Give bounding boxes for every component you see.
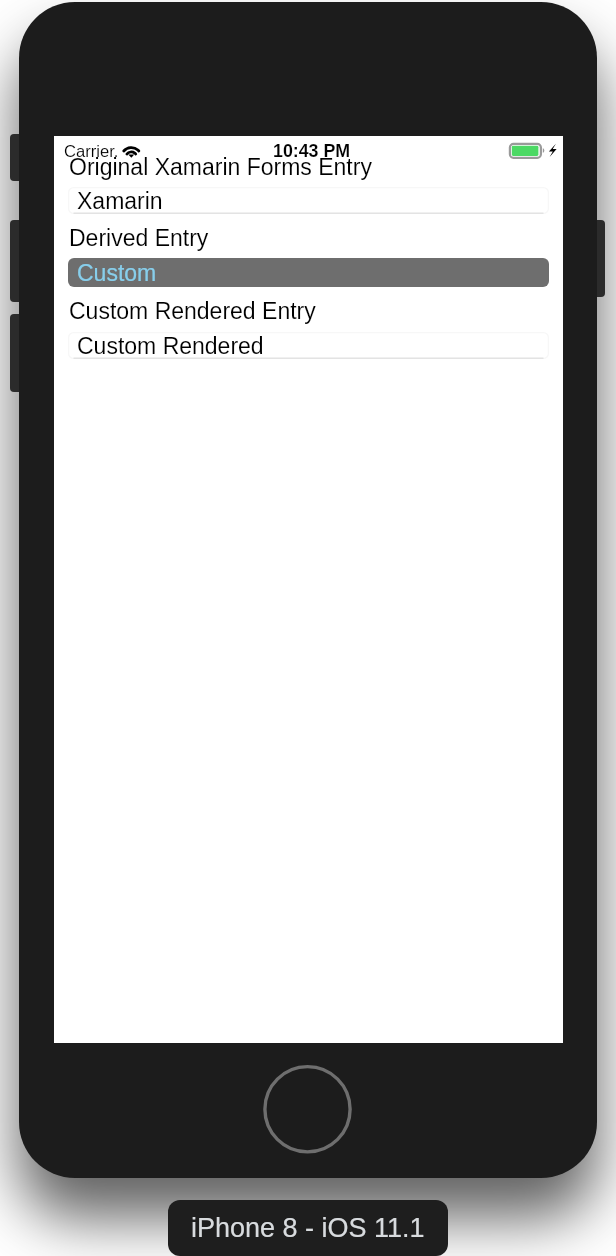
button[interactable]: Custom [68,258,549,287]
other: Home [257,1059,358,1160]
staticText: Custom [77,260,157,286]
other: Power [592,220,605,297]
button[interactable]: Xamarin [68,187,549,214]
staticText: Carrier. [64,142,119,161]
other: Volume down [10,314,24,392]
staticText: 10:43 PM [273,141,351,161]
staticText: Custom Rendered [77,333,264,359]
staticText: Original Xamarin Forms Entry [69,154,372,180]
button[interactable]: Custom Rendered [68,332,549,359]
staticText: iPhone 8 - iOS 11.1 [191,1213,425,1243]
other: Volume up [10,220,24,302]
staticText: Derived Entry [69,225,209,251]
staticText: Custom Rendered Entry [69,298,316,324]
button[interactable]: iPhone 8 - iOS 11.1 [168,1200,448,1256]
other: Silent switch [10,134,24,181]
staticText: Xamarin [77,188,163,214]
